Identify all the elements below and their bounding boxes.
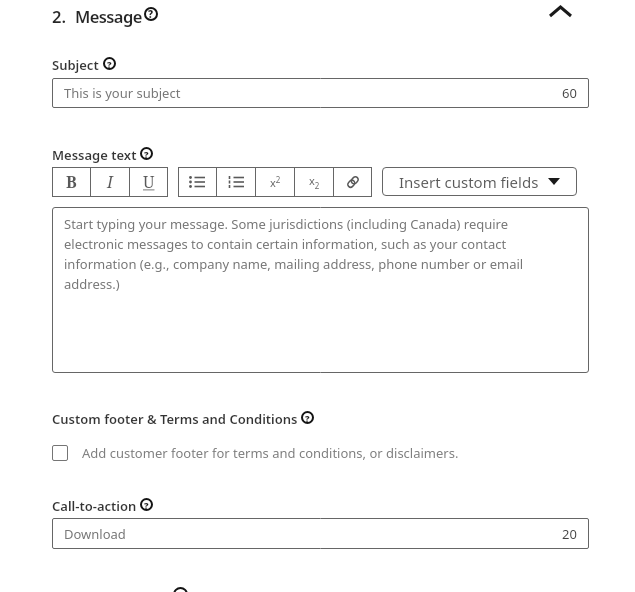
staticText: Start typing your message. Some jurisdic… [64,215,559,293]
button[interactable]: I [91,167,129,197]
staticText: x2 [309,173,320,191]
button[interactable]: Download [52,518,589,549]
staticText: Message text [52,146,137,164]
button[interactable]: This is your subject [52,78,589,108]
staticText: Call-to-action [52,497,137,515]
staticText: This is your subject [64,84,181,102]
button[interactable]: x2 [256,167,294,197]
staticText: ? [144,499,149,511]
staticText: Download [64,525,126,543]
button[interactable]: B [52,167,90,197]
staticText: I [107,171,113,193]
staticText: 60 [562,84,577,102]
staticText: ? [305,412,310,424]
button[interactable]: x2 [295,167,333,197]
staticText: 2. [52,5,66,27]
staticText: B [66,171,77,193]
staticText: ? [107,58,112,70]
staticText: Add customer footer for terms and condit… [82,444,459,462]
button[interactable] [217,167,255,197]
button[interactable] [550,7,571,16]
button[interactable]: Start typing your message. Some jurisdic… [52,207,589,373]
staticText: ? [148,7,154,21]
staticText: 20 [562,525,577,543]
button[interactable] [334,167,372,197]
staticText: Custom footer & Terms and Conditions [52,410,298,428]
staticText: x2 [270,174,281,190]
staticText: Insert custom fields [399,172,539,192]
staticText: Subject [52,56,99,74]
button[interactable]: Add customer footer for terms and condit… [52,444,459,462]
button[interactable]: Insert custom fields [382,167,577,196]
button[interactable]: U [130,167,168,197]
button[interactable] [178,167,216,197]
staticText: U [143,171,155,193]
staticText: ? [144,148,149,160]
staticText: Message [75,5,142,27]
